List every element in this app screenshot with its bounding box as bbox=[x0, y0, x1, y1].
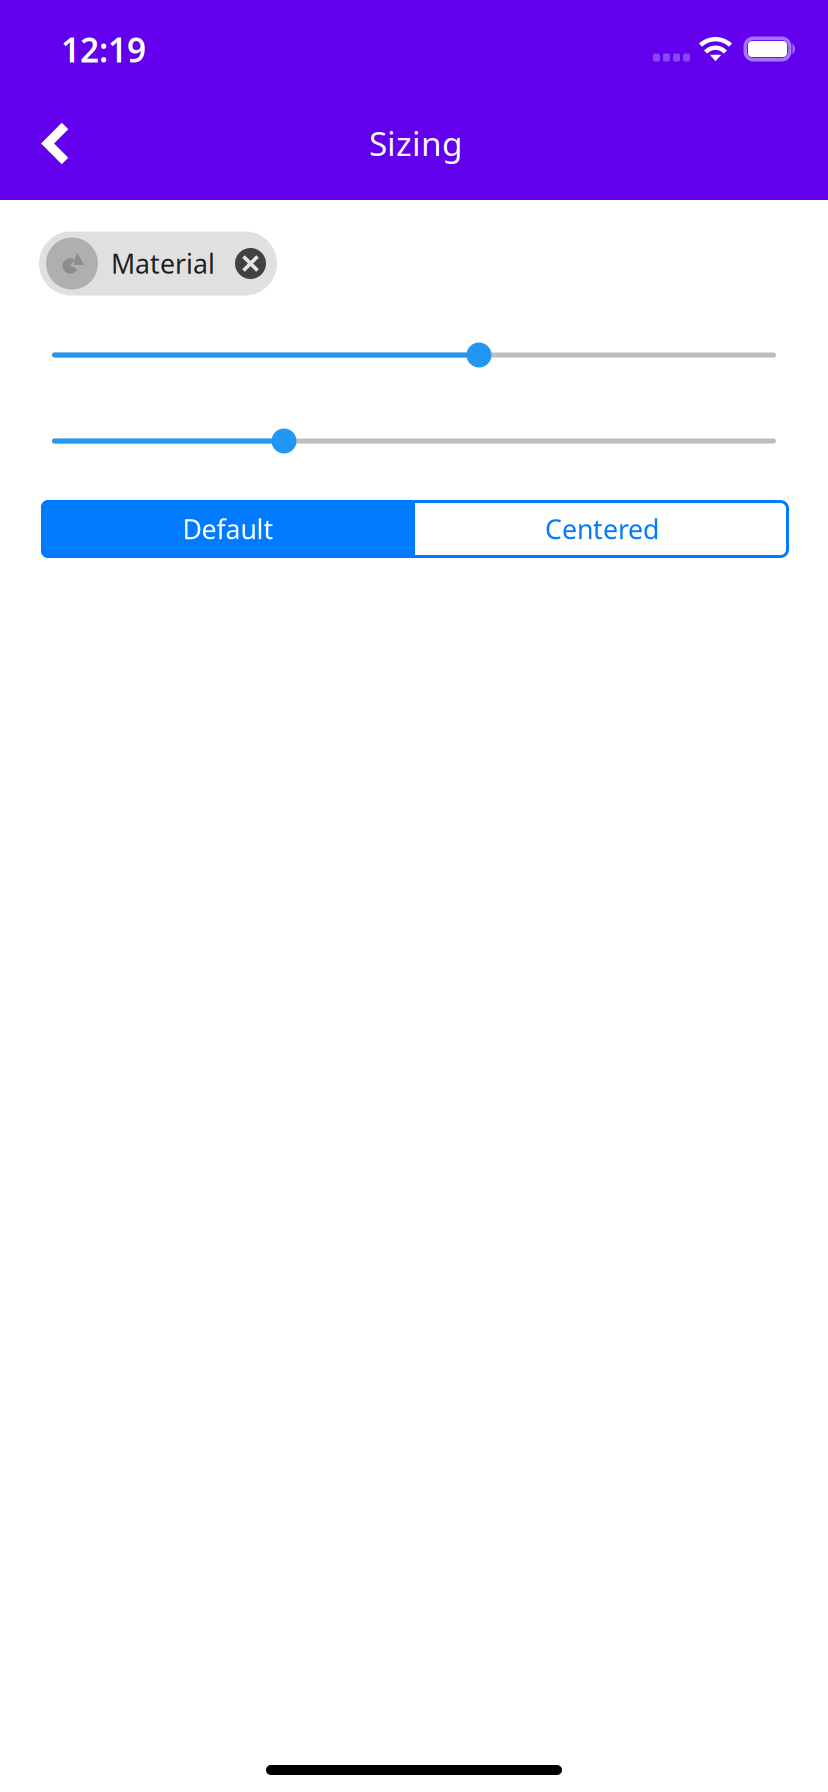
button[interactable]: Height bbox=[52, 421, 776, 461]
button[interactable]: Material bbox=[39, 231, 277, 295]
staticText: Material bbox=[111, 246, 215, 281]
button[interactable]: Back bbox=[6, 87, 106, 199]
staticText: Default bbox=[182, 511, 273, 547]
button[interactable]: Width bbox=[52, 335, 776, 375]
button[interactable]: Centered bbox=[415, 500, 789, 558]
button[interactable]: Default bbox=[41, 500, 415, 558]
staticText: Sizing bbox=[369, 121, 463, 165]
staticText: 12:19 bbox=[61, 27, 146, 72]
staticText: Centered bbox=[545, 511, 659, 547]
